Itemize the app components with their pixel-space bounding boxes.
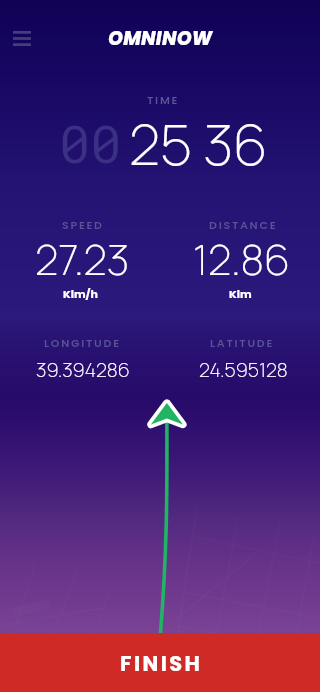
- staticText: Klm/h: [63, 286, 98, 301]
- button[interactable]: FINISH: [0, 633, 320, 692]
- staticText: TIME: [147, 92, 180, 107]
- staticText: DISTANCE: [209, 217, 278, 232]
- staticText: 25 36: [129, 105, 268, 181]
- staticText: 39.394286: [36, 356, 130, 383]
- staticText: 00: [59, 109, 122, 178]
- staticText: 27.23: [35, 230, 130, 287]
- staticText: LATITUDE: [210, 335, 275, 350]
- staticText: OMNINOW: [108, 25, 213, 52]
- staticText: FINISH: [120, 649, 203, 678]
- staticText: 12.86: [193, 230, 291, 287]
- staticText: LONGITUDE: [44, 335, 121, 350]
- staticText: Klm: [229, 286, 252, 301]
- button[interactable]: Menu: [2, 16, 42, 56]
- staticText: SPEED: [62, 217, 104, 232]
- staticText: 24.595128: [199, 356, 288, 383]
